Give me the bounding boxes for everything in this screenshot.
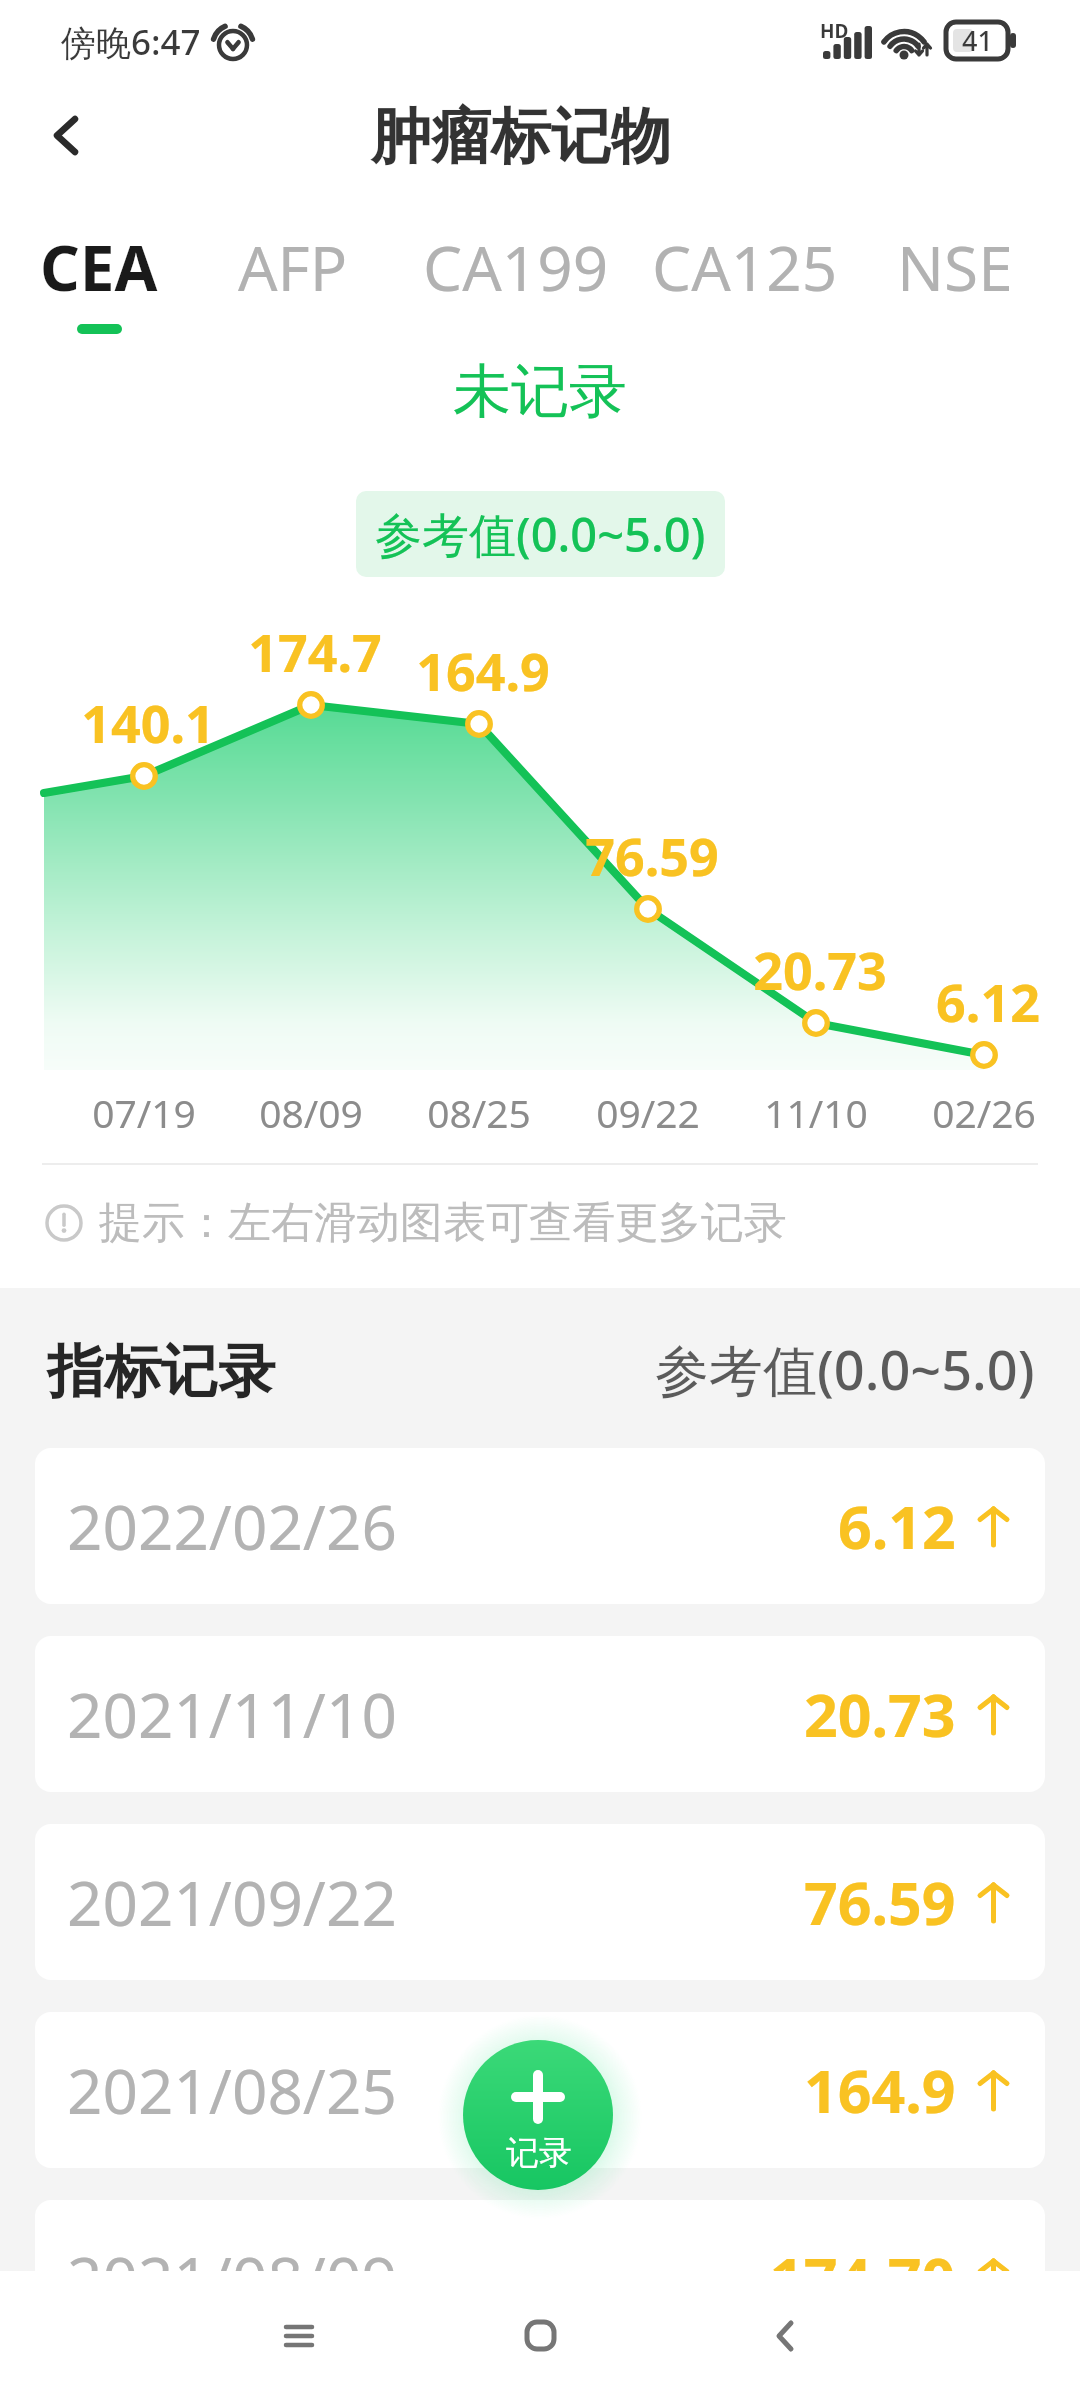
staticText: 76.59: [552, 820, 752, 891]
button[interactable]: Recent apps: [209, 2271, 389, 2400]
button[interactable]: AFP: [238, 225, 348, 324]
staticText: 未记录: [0, 355, 1080, 428]
staticText: HD: [820, 18, 849, 44]
button[interactable]: 2021/11/10: [35, 1636, 1045, 1792]
staticText: 2021/11/10: [67, 1672, 397, 1756]
button[interactable]: NSE: [897, 225, 1013, 324]
staticText: 08/25: [379, 1086, 579, 1139]
staticText: 傍晚6:47: [61, 18, 201, 66]
staticText: 2021/08/09: [67, 2236, 397, 2320]
staticText: 174.7: [215, 616, 415, 687]
button[interactable]: CA125: [652, 225, 838, 324]
staticText: 76.59: [804, 1862, 956, 1942]
staticText: 指标记录: [47, 1336, 275, 1408]
staticText: NSE: [897, 225, 1013, 309]
staticText: 6.12: [888, 966, 1080, 1037]
staticText: 6.12: [838, 1486, 956, 1566]
staticText: 20.73: [804, 1674, 956, 1754]
staticText: 记录: [506, 2132, 572, 2174]
staticText: 164.9: [804, 2050, 956, 2130]
staticText: CA199: [423, 225, 609, 309]
staticText: 02/26: [884, 1086, 1080, 1139]
button[interactable]: 2021/08/09: [35, 2200, 1045, 2356]
button[interactable]: Back: [695, 2271, 875, 2400]
staticText: 41: [962, 22, 993, 59]
button[interactable]: Back: [10, 79, 122, 191]
button[interactable]: 记录: [463, 2040, 613, 2190]
staticText: 20.73: [720, 934, 920, 1005]
button[interactable]: CEA: [40, 225, 158, 334]
staticText: CA125: [652, 225, 838, 309]
button[interactable]: 2021/08/25: [35, 2012, 1045, 2168]
button[interactable]: Home: [450, 2271, 630, 2400]
staticText: CEA: [40, 225, 158, 309]
staticText: 提示：左右滑动图表可查看更多记录: [99, 1196, 787, 1250]
staticText: 参考值(0.0~5.0): [655, 1332, 1035, 1406]
staticText: 11/10: [716, 1086, 916, 1139]
button[interactable]: 参考值(0.0~5.0): [356, 491, 725, 577]
staticText: 09/22: [548, 1086, 748, 1139]
staticText: 08/09: [211, 1086, 411, 1139]
button[interactable]: 2021/09/22: [35, 1824, 1045, 1980]
staticText: 2021/08/25: [67, 2048, 397, 2132]
staticText: 参考值(0.0~5.0): [375, 502, 706, 566]
staticText: 140.1: [48, 687, 248, 758]
staticText: 164.9: [383, 635, 583, 706]
button[interactable]: 2022/02/26: [35, 1448, 1045, 1604]
staticText: 174.70: [770, 2238, 956, 2318]
staticText: AFP: [238, 225, 348, 309]
staticText: 肿瘤标记物: [371, 99, 671, 175]
staticText: 2021/09/22: [67, 1860, 397, 1944]
button[interactable]: CA199: [423, 225, 609, 324]
staticText: 2022/02/26: [67, 1484, 397, 1568]
staticText: 07/19: [44, 1086, 244, 1139]
